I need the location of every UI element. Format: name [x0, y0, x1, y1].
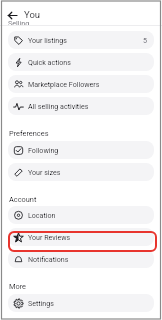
- staticText: Notifications: [28, 255, 69, 263]
- staticText: Your Reviews: [28, 233, 71, 241]
- button[interactable]: Back: [5, 8, 19, 22]
- staticText: Quick actions: [28, 58, 71, 66]
- button[interactable]: Location: [8, 206, 154, 224]
- button[interactable]: Your listings: [8, 31, 154, 49]
- staticText: Selling: [8, 19, 30, 25]
- button[interactable]: All selling activities: [8, 97, 154, 115]
- staticText: More: [9, 282, 27, 291]
- staticText: Following: [28, 146, 59, 154]
- staticText: Marketplace Followers: [28, 80, 100, 88]
- button[interactable]: Quick actions: [8, 53, 154, 71]
- staticText: Your sizes: [28, 168, 61, 176]
- staticText: You: [24, 9, 41, 20]
- staticText: Location: [28, 211, 56, 219]
- staticText: Account: [9, 195, 37, 204]
- button[interactable]: Your sizes: [8, 163, 154, 181]
- staticText: Preferences: [9, 129, 49, 138]
- staticText: Settings: [28, 299, 54, 307]
- button[interactable]: Your Reviews: [8, 228, 154, 246]
- staticText: All selling activities: [28, 102, 89, 110]
- button[interactable]: Notifications: [8, 250, 154, 268]
- staticText: Your listings: [28, 36, 67, 44]
- button[interactable]: Settings: [8, 294, 154, 312]
- staticText: 5: [143, 36, 147, 44]
- button[interactable]: Marketplace Followers: [8, 75, 154, 93]
- button[interactable]: Following: [8, 141, 154, 159]
